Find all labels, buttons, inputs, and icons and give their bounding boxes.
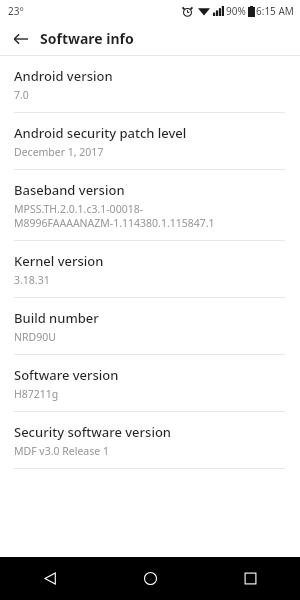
staticText: Kernel version xyxy=(14,252,104,270)
button[interactable]: Recents xyxy=(200,557,300,600)
staticText: Android version xyxy=(14,67,113,85)
staticText: Security software version xyxy=(14,423,172,441)
staticText: Build number xyxy=(14,309,99,327)
button[interactable]: Baseband version xyxy=(0,170,300,241)
staticText: 6:15 AM xyxy=(256,4,294,18)
button[interactable]: Security software version xyxy=(0,412,300,469)
button[interactable]: Kernel version xyxy=(0,241,300,298)
staticText: Android security patch level xyxy=(14,124,187,142)
button[interactable]: Android version xyxy=(0,56,300,113)
staticText: 7.0 xyxy=(14,88,29,102)
staticText: 3.18.31 xyxy=(14,273,50,287)
staticText: M8996FAAAANAZM-1.114380.1.115847.1 xyxy=(14,216,215,230)
button[interactable]: Build number xyxy=(0,298,300,355)
button[interactable]: Android security patch level xyxy=(0,113,300,170)
staticText: 23° xyxy=(8,4,24,18)
staticText: H87211g xyxy=(14,387,59,401)
staticText: 90% xyxy=(226,4,246,18)
staticText: Software info xyxy=(40,29,134,48)
button[interactable]: Back xyxy=(0,557,100,600)
button[interactable]: Home xyxy=(100,557,200,600)
button[interactable]: Back xyxy=(8,26,34,52)
button[interactable]: Software version xyxy=(0,355,300,412)
staticText: Software version xyxy=(14,366,119,384)
staticText: NRD90U xyxy=(14,330,56,344)
staticText: December 1, 2017 xyxy=(14,145,104,159)
staticText: Baseband version xyxy=(14,181,125,199)
staticText: MDF v3.0 Release 1 xyxy=(14,444,109,458)
staticText: MPSS.TH.2.0.1.c3.1-00018- xyxy=(14,202,144,216)
